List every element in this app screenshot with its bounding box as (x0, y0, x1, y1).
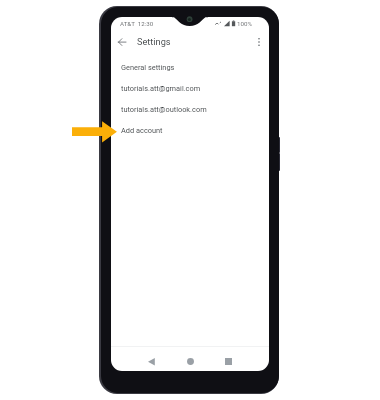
staticText: Settings (137, 36, 171, 47)
button[interactable]: General settings (111, 56, 269, 77)
button[interactable]: Recent apps (217, 348, 239, 370)
staticText: tutorials.att@outlook.com (121, 105, 207, 114)
button[interactable]: tutorials.att@gmail.com (111, 77, 269, 98)
staticText: Add account (121, 126, 163, 135)
button[interactable]: tutorials.att@outlook.com (111, 98, 269, 119)
button[interactable]: Back (114, 34, 130, 50)
button[interactable]: More options (251, 34, 267, 50)
button[interactable]: Home (179, 348, 201, 370)
staticText: AT&T 12:30 (120, 20, 154, 27)
button[interactable]: Add account (111, 119, 269, 140)
button[interactable]: Back (140, 348, 162, 370)
staticText: tutorials.att@gmail.com (121, 84, 201, 93)
staticText: 100% (237, 20, 252, 27)
staticText: General settings (121, 63, 175, 72)
